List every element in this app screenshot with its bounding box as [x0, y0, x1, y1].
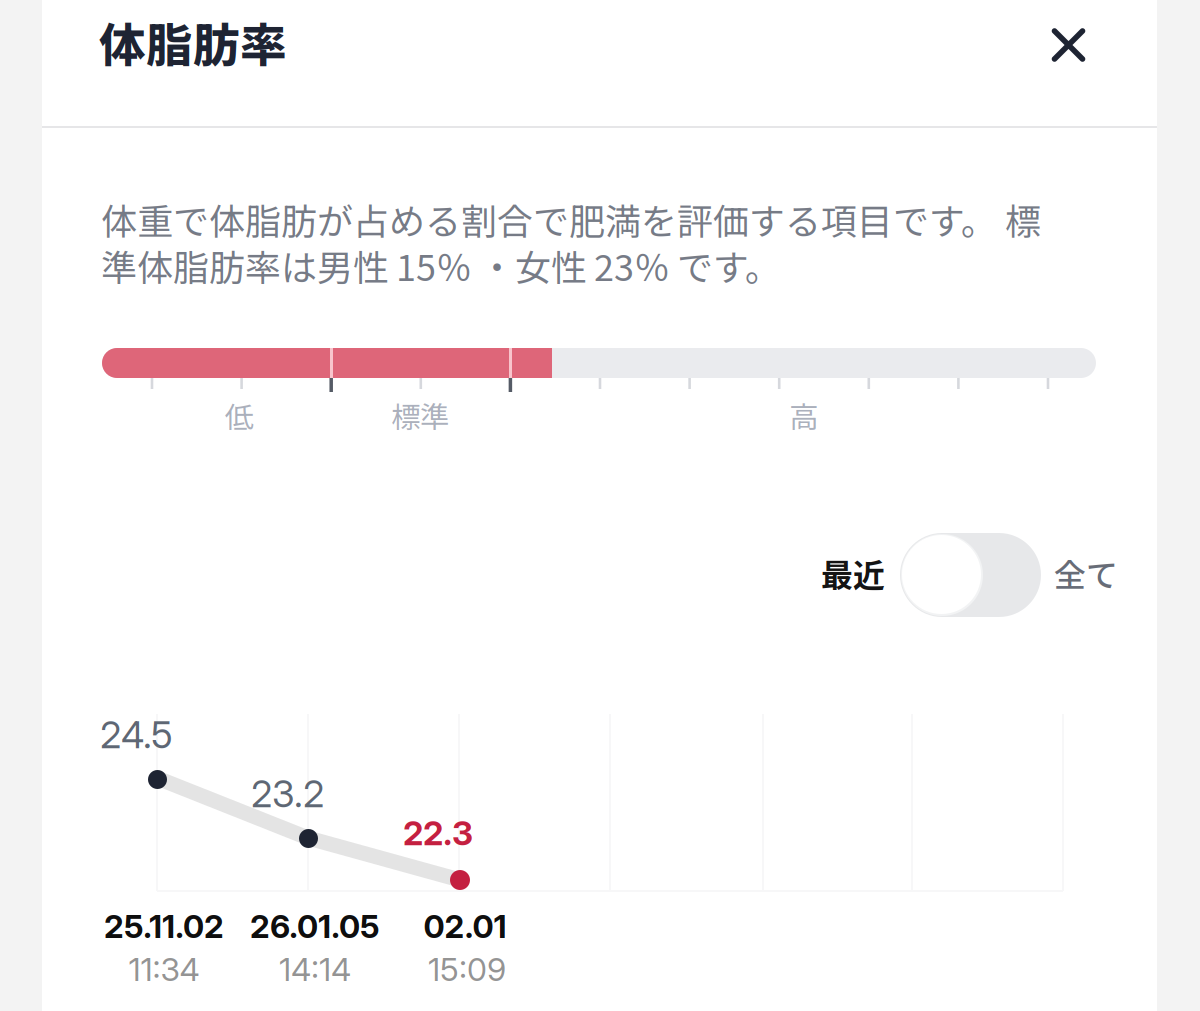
button[interactable]: 期間切り替え — [900, 533, 1041, 617]
staticText: 25.11.02 — [104, 907, 224, 946]
button[interactable]: 最近 — [818, 545, 888, 601]
staticText: 低 — [224, 394, 253, 436]
staticText: 体脂肪率 — [99, 8, 287, 76]
staticText: 24.5 — [100, 712, 173, 757]
staticText: 14:14 — [279, 950, 351, 989]
staticText: 23.2 — [251, 771, 324, 816]
staticText: 最近 — [821, 550, 885, 596]
staticText: 02.01 — [423, 907, 506, 946]
staticText: 高 — [789, 394, 818, 436]
staticText: 体重で体脂肪が占める割合で肥満を評価する項目です。 標準体脂肪率は男性 15％ … — [101, 193, 1041, 291]
staticText: 全て — [1054, 550, 1118, 596]
staticText: 26.01.05 — [250, 907, 380, 946]
staticText: 22.3 — [403, 813, 473, 853]
staticText: 11:34 — [128, 950, 199, 989]
button[interactable]: 全て — [1051, 545, 1121, 601]
staticText: 15:09 — [428, 950, 506, 989]
button[interactable]: 閉じる — [1035, 12, 1101, 78]
staticText: 標準 — [391, 394, 449, 436]
